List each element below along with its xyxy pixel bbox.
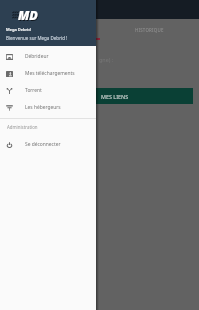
staticText: Mega Debrid bbox=[6, 27, 31, 32]
staticText: HISTORIQUE bbox=[135, 27, 164, 33]
staticText: Débrideur bbox=[25, 53, 49, 60]
staticText: Mes téléchargements bbox=[25, 70, 75, 77]
staticText: Les hébergeurs bbox=[25, 104, 61, 111]
staticText: Administration bbox=[7, 124, 38, 130]
button[interactable]: Les hébergeurs bbox=[0, 99, 96, 116]
staticText: Torrent bbox=[25, 87, 42, 94]
staticText: Se déconnecter bbox=[25, 141, 61, 148]
button[interactable]: Se déconnecter bbox=[0, 136, 96, 153]
button[interactable]: Débrideur bbox=[0, 48, 96, 65]
button[interactable]: MES LIENS bbox=[6, 88, 193, 104]
button[interactable]: Torrent bbox=[0, 82, 96, 99]
staticText: gne) : bbox=[99, 56, 114, 63]
staticText: MD bbox=[18, 7, 38, 20]
button[interactable]: Mes téléchargements bbox=[0, 65, 96, 82]
staticText: MD bbox=[19, 8, 39, 21]
button[interactable]: EN COURS bbox=[0, 19, 99, 40]
staticText: Bienvenue sur Mega Debrid ! bbox=[6, 35, 68, 41]
staticText: MES LIENS bbox=[101, 93, 129, 100]
button[interactable]: HISTORIQUE bbox=[99, 19, 199, 40]
